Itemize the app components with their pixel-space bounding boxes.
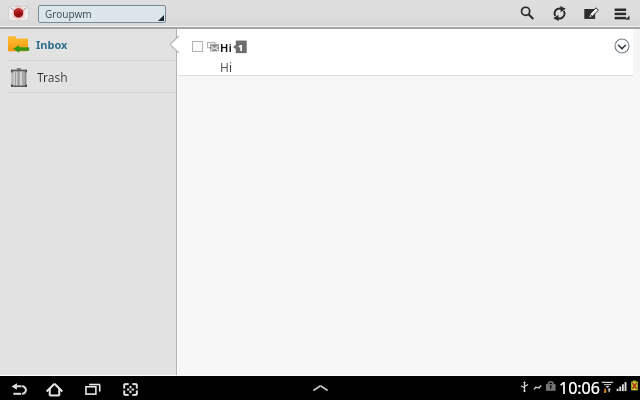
button[interactable]: Recents (82, 378, 104, 400)
button[interactable]: Inbox (0, 29, 178, 60)
button[interactable]: Trash (0, 61, 178, 92)
button[interactable]: Expand conversation (614, 38, 630, 54)
button[interactable]: Groupwm (38, 5, 166, 23)
button[interactable]: Refresh (547, 1, 571, 25)
button[interactable]: Select conversation (192, 41, 203, 52)
button[interactable] (178, 29, 633, 75)
button[interactable]: Hide keyboard (309, 377, 331, 399)
button[interactable]: Screenshot (119, 378, 141, 400)
staticText: 1 (238, 41, 244, 54)
staticText: Groupwm (45, 7, 92, 21)
staticText: Hi (220, 59, 232, 75)
button[interactable]: More options (610, 1, 634, 25)
button[interactable]: Compose (579, 1, 603, 25)
staticText: Hi (220, 40, 232, 55)
button[interactable]: Search (515, 1, 539, 25)
staticText: Inbox (36, 37, 68, 52)
staticText: 10:06 (559, 377, 600, 399)
button[interactable]: Home (43, 378, 65, 400)
staticText: Trash (37, 69, 68, 85)
button[interactable]: Email app (8, 4, 29, 23)
button[interactable]: Back (8, 378, 30, 400)
